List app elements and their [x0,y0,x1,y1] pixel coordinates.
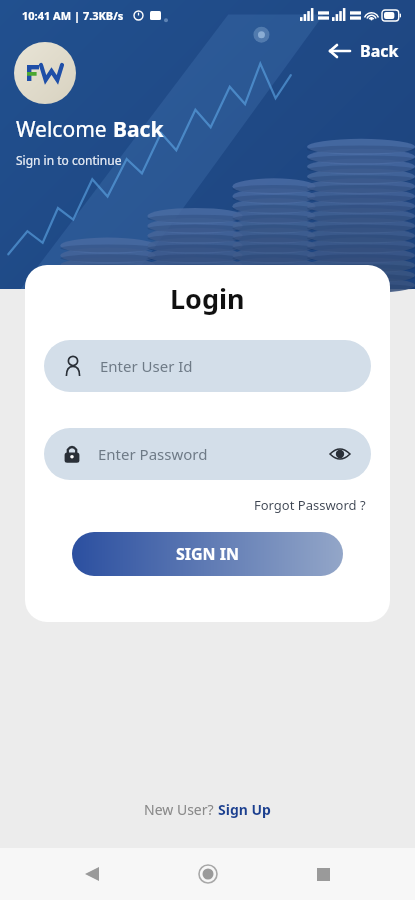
button[interactable]: Recents [299,850,347,898]
button[interactable]: Forgot Password ? [252,494,368,516]
staticText: 10:41 AM | 7.3KB/s [22,8,124,23]
staticText: Sign in to continue [16,152,122,168]
button[interactable]: Enter User Id [44,340,371,392]
button[interactable]: Show password [327,441,353,467]
staticText: Enter User Id [100,356,353,376]
staticText: New User? [144,800,218,819]
button[interactable]: New User? [140,798,275,821]
staticText: Sign Up [218,800,271,819]
staticText: Login [170,280,245,317]
staticText: Welcome [16,115,113,144]
staticText: Back [360,40,399,62]
staticText: Back [113,115,164,144]
button[interactable]: SIGN IN [72,532,343,576]
button[interactable]: Enter Password [44,428,371,480]
staticText: Enter Password [98,444,327,464]
button[interactable]: Back [322,36,405,66]
button[interactable]: Back [68,850,116,898]
staticText: SIGN IN [176,543,240,565]
button[interactable]: App logo [14,42,76,104]
button[interactable]: Home [184,850,232,898]
